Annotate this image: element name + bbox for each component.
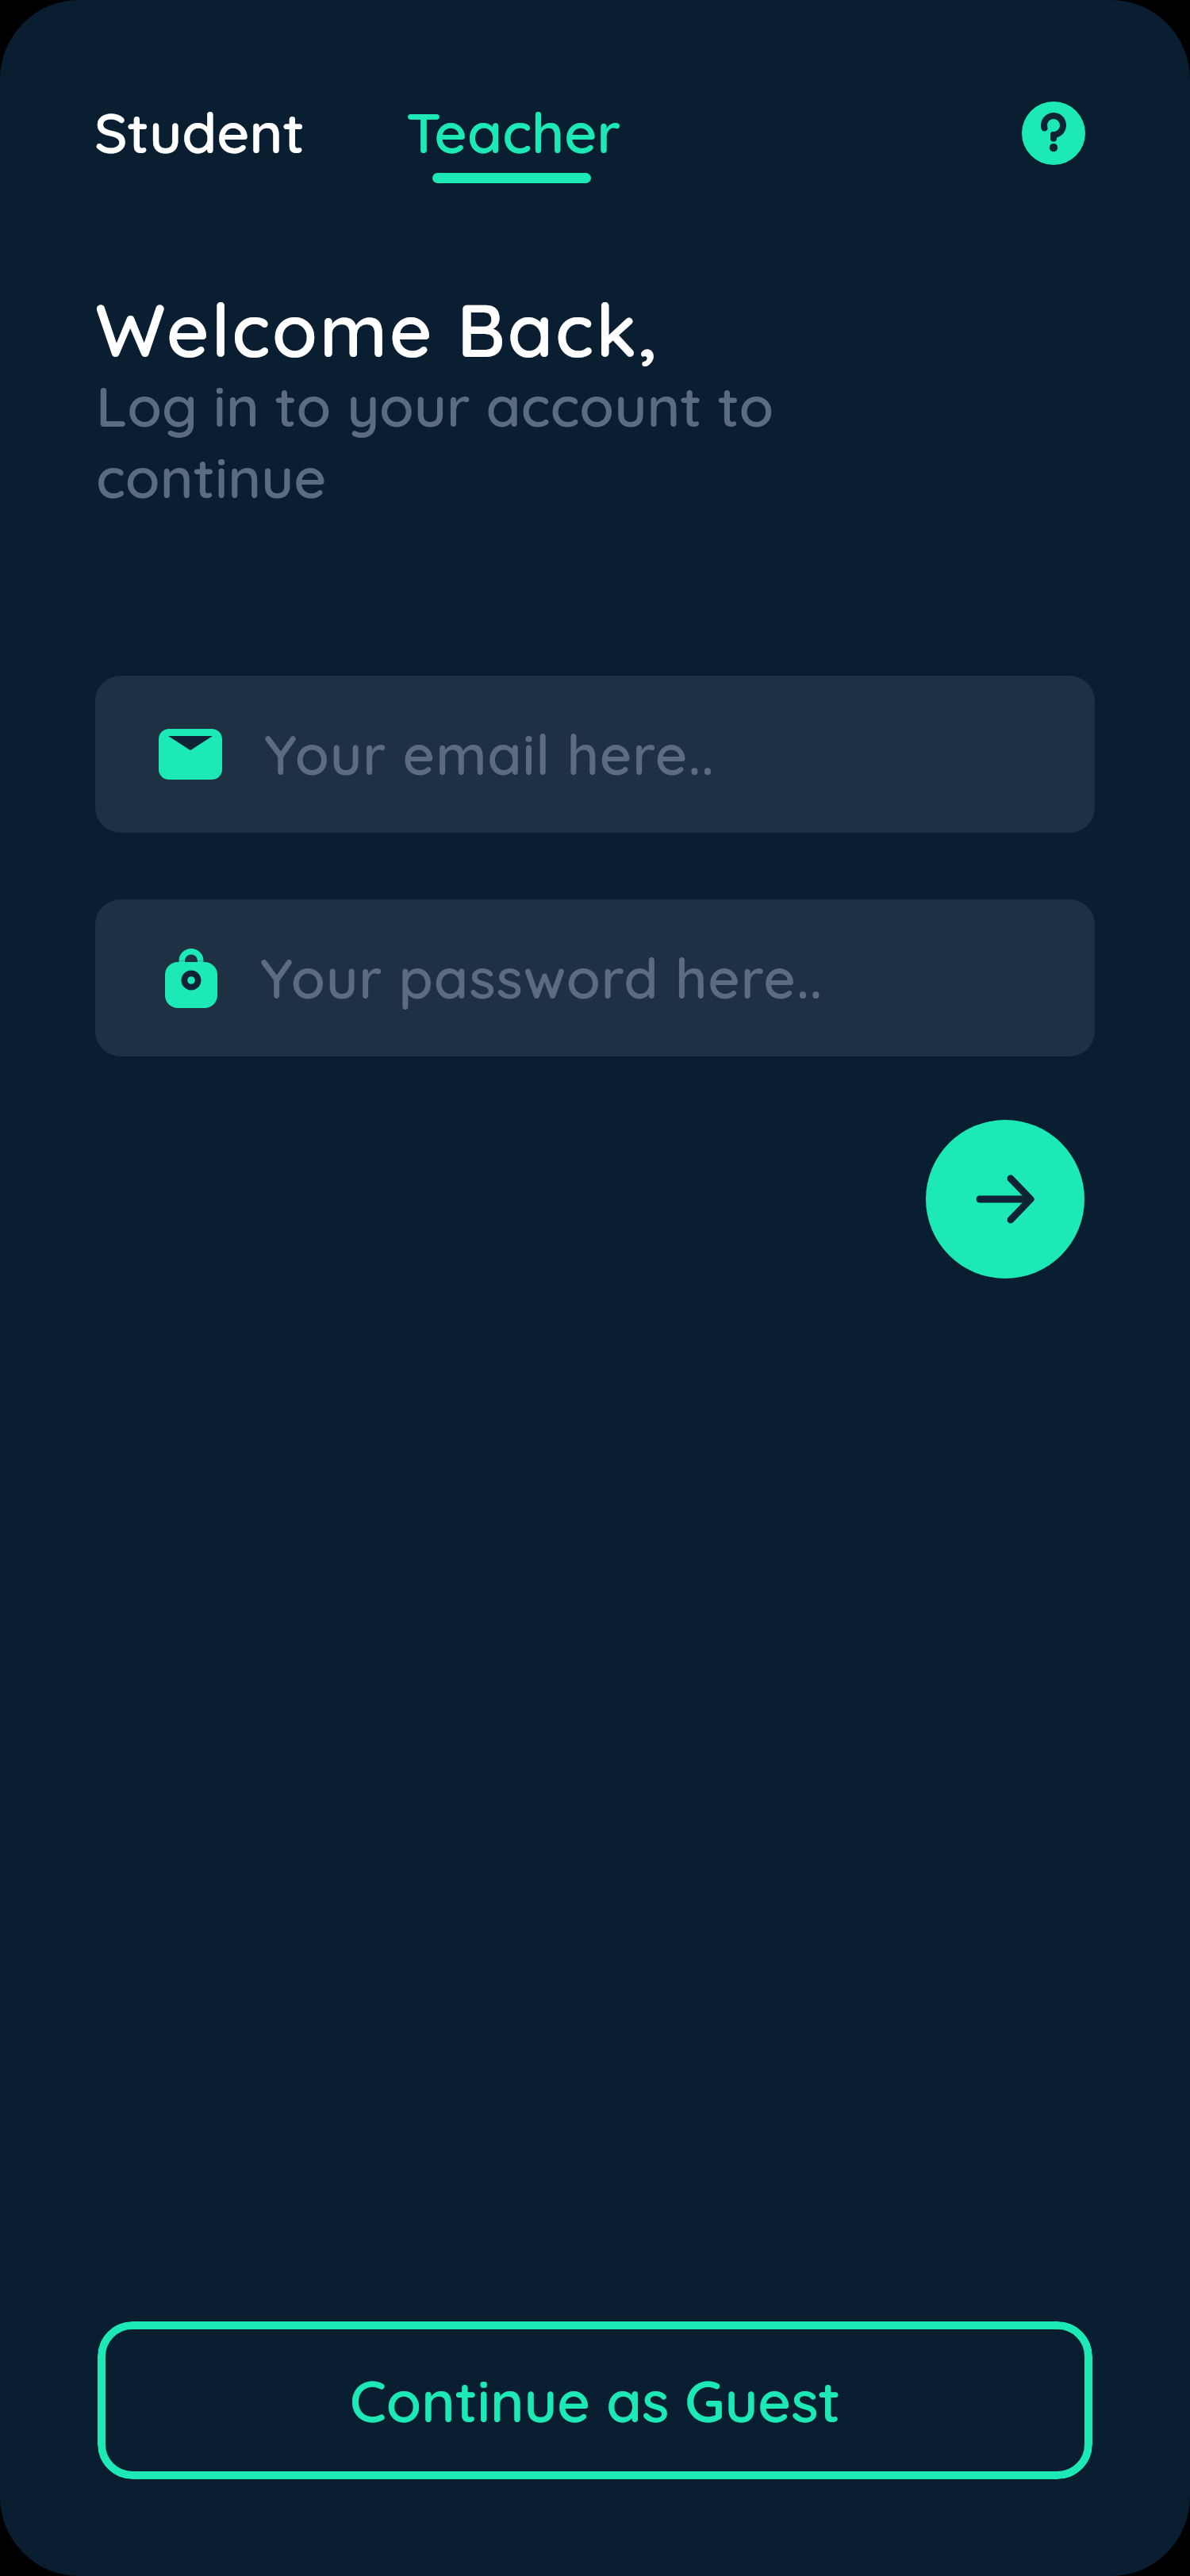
staticText: Your email here..: [264, 719, 715, 789]
staticText: Log in to your account to continue: [96, 370, 774, 512]
staticText: Continue as Guest: [350, 2365, 841, 2436]
staticText: Welcome Back,: [95, 283, 659, 375]
staticText: Your password here..: [260, 943, 823, 1013]
staticText: Student: [94, 97, 305, 167]
button[interactable]: [1022, 102, 1085, 165]
staticText: Teacher: [406, 97, 621, 167]
button[interactable]: Student: [94, 97, 305, 167]
button[interactable]: [926, 1120, 1084, 1278]
button[interactable]: Teacher: [406, 97, 621, 167]
button[interactable]: Your password here..: [95, 899, 1095, 1056]
button[interactable]: Your email here..: [95, 676, 1095, 833]
button[interactable]: Continue as Guest: [98, 2321, 1092, 2479]
